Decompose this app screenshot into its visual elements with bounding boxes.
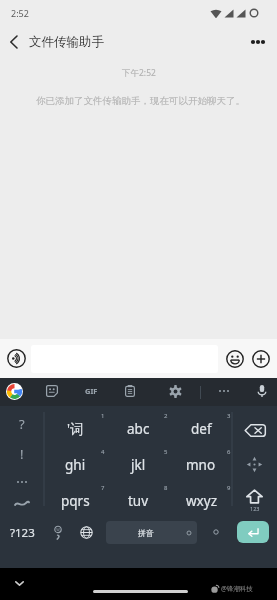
button[interactable]: ? <box>0 409 44 439</box>
button[interactable]: Shift <box>232 483 277 517</box>
button[interactable]: pqrs <box>44 483 106 519</box>
button[interactable]: Settings <box>162 378 188 404</box>
button[interactable]: ?123 <box>0 518 44 548</box>
button[interactable]: GIF <box>78 378 104 404</box>
button[interactable]: ghi <box>44 447 106 483</box>
staticText: 你已添加了文件传输助手，现在可以开始聊天了。 <box>36 95 245 107</box>
button[interactable]: Stickers <box>39 378 65 404</box>
staticText: ! <box>20 445 24 463</box>
staticText: 1 <box>101 412 105 420</box>
button[interactable]: Tilde <box>0 492 44 516</box>
staticText: abc <box>127 420 150 438</box>
staticText: 5 <box>164 448 168 456</box>
button[interactable]: jkl <box>107 447 169 483</box>
staticText: '词 <box>67 420 84 438</box>
button[interactable]: Period <box>206 520 226 544</box>
staticText: 2 <box>164 412 168 420</box>
button[interactable]: def <box>170 411 232 447</box>
button[interactable]: mno <box>170 447 232 483</box>
staticText: 123 <box>250 505 260 512</box>
staticText: wxyz <box>186 492 217 510</box>
button[interactable]: Voice <box>249 378 275 404</box>
staticText: ghi <box>65 456 86 474</box>
staticText: 3 <box>227 412 231 420</box>
button[interactable] <box>1 378 27 404</box>
button[interactable]: More symbols <box>0 470 44 494</box>
button[interactable]: ! <box>0 440 44 468</box>
staticText: def <box>191 420 212 438</box>
button[interactable]: abc <box>107 411 169 447</box>
button[interactable]: More <box>248 346 274 372</box>
staticText: 2:52 <box>11 7 29 19</box>
button[interactable]: tuv <box>107 483 169 519</box>
staticText: jkl <box>131 456 146 474</box>
staticText: GIF <box>85 386 98 396</box>
button[interactable]: Emoji <box>222 346 248 372</box>
staticText: mno <box>186 456 216 474</box>
button[interactable]: Clipboard <box>117 378 143 404</box>
button[interactable]: Enter <box>237 521 269 543</box>
button[interactable]: wxyz <box>170 483 232 519</box>
staticText: @锋潮科技 <box>221 584 253 593</box>
staticText: ?123 <box>10 525 35 541</box>
staticText: 7 <box>101 484 105 492</box>
staticText: 文件传输助手 <box>29 34 104 50</box>
button[interactable]: Back <box>0 26 26 57</box>
button[interactable]: Change language <box>73 518 99 546</box>
button[interactable]: Move cursor <box>232 448 277 480</box>
staticText: tuv <box>128 492 149 510</box>
staticText: ? <box>19 415 25 433</box>
staticText: 9 <box>227 484 231 492</box>
button[interactable]: Backspace <box>232 414 277 446</box>
button[interactable]: More <box>211 378 237 404</box>
staticText: 4 <box>101 448 105 456</box>
button[interactable]: Space <box>106 521 197 544</box>
staticText: pqrs <box>61 492 90 510</box>
staticText: 拼音 <box>138 528 154 538</box>
staticText: 6 <box>227 448 231 456</box>
staticText: 8 <box>164 484 168 492</box>
staticText: 下午2:52 <box>122 67 156 79</box>
button[interactable]: '词 <box>44 411 106 447</box>
button[interactable]: Hide keyboard <box>9 573 29 593</box>
button[interactable]: Voice input <box>0 339 33 378</box>
button[interactable]: More options <box>243 26 273 57</box>
button[interactable]: Comma <box>46 519 70 547</box>
